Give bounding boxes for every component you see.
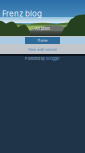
button[interactable]: View web version bbox=[17, 46, 67, 52]
staticText: Frenz blog bbox=[2, 9, 42, 18]
staticText: Home bbox=[37, 38, 47, 43]
staticText: View web version bbox=[28, 47, 57, 52]
staticText: All posts bbox=[35, 26, 50, 31]
staticText: Blogger bbox=[46, 56, 60, 61]
button[interactable]: Blogger bbox=[46, 56, 60, 61]
button[interactable]: Home bbox=[25, 37, 60, 44]
staticText: Powered by bbox=[25, 56, 45, 61]
